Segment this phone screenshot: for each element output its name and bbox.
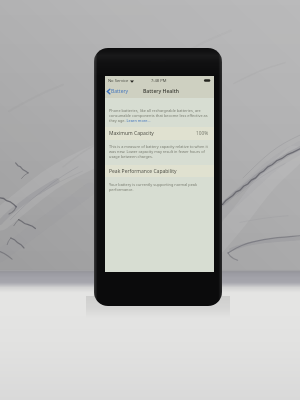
staticText: Peak Performance Capability [109, 168, 177, 175]
button[interactable]: Battery [105, 85, 133, 98]
staticText: Battery [111, 88, 129, 95]
staticText: Phone batteries, like all rechargeable b… [109, 108, 210, 123]
staticText: This is a measure of battery capacity re… [109, 144, 210, 159]
staticText: No Service [108, 78, 129, 84]
staticText: Battery Health [143, 88, 180, 95]
staticText: 7:48 PM [151, 78, 167, 84]
staticText: Your battery is currently supporting nor… [109, 182, 210, 192]
button[interactable]: Maximum Capacity [105, 127, 214, 140]
staticText: Maximum Capacity [109, 130, 154, 137]
button[interactable]: Peak Performance Capability [105, 165, 214, 177]
staticText: 100% [196, 130, 209, 137]
